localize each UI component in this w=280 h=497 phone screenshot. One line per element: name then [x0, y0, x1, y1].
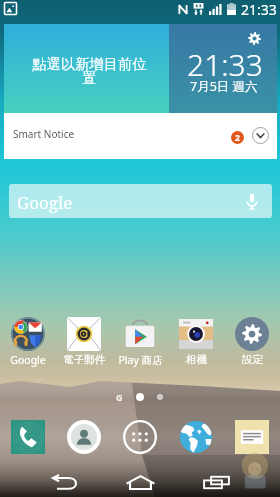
button[interactable]: Voice search	[246, 193, 258, 210]
staticText: 設定	[242, 353, 263, 366]
staticText: 點選以新增目前位置	[30, 55, 149, 87]
staticText: 電子郵件	[63, 353, 105, 366]
button[interactable]: Google	[0, 317, 56, 367]
staticText: Play 商店	[118, 353, 163, 367]
button[interactable]: 設定	[224, 317, 280, 366]
button[interactable]: Expand Smart Notice	[252, 127, 269, 144]
button[interactable]: 點選以新增目前位置	[4, 24, 169, 113]
button[interactable]: Contacts	[56, 419, 112, 455]
staticText: 2	[235, 132, 240, 144]
button[interactable]: 相機	[168, 317, 224, 366]
staticText: 7月5日 週六	[190, 78, 258, 95]
button[interactable]: 電子郵件	[56, 317, 112, 366]
staticText: 21:33	[241, 0, 277, 18]
button[interactable]: Home	[116, 468, 164, 497]
button[interactable]: Phone	[0, 419, 56, 455]
staticText: Smart Notice	[13, 127, 231, 141]
button[interactable]: Browser	[168, 419, 224, 455]
button[interactable]: Google	[9, 184, 272, 218]
button[interactable]: Clock settings	[248, 32, 261, 45]
staticText: 相機	[186, 353, 207, 366]
button[interactable]: Recent apps	[192, 468, 240, 497]
staticText: 21:33	[187, 44, 263, 85]
staticText: G	[116, 391, 123, 403]
button[interactable]: Play 商店	[112, 317, 168, 367]
button[interactable]: Clock settings	[169, 24, 277, 113]
button[interactable]: Back	[40, 468, 88, 497]
staticText: Google	[17, 191, 73, 214]
button[interactable]: Smart Notice	[4, 113, 277, 159]
button[interactable]: Memo	[224, 419, 280, 455]
staticText: Google	[10, 353, 46, 367]
button[interactable]: All apps	[112, 419, 168, 455]
